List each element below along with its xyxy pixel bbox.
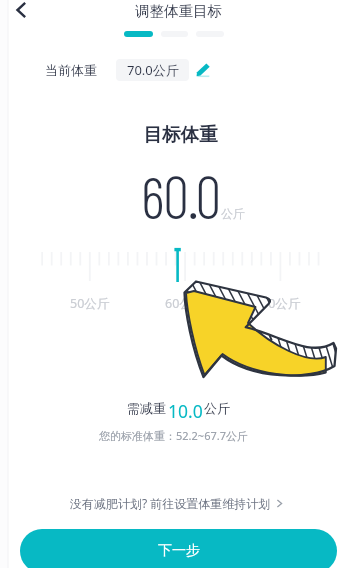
staticText: 当前体重 (45, 62, 97, 78)
button[interactable]: 下一步 (20, 529, 337, 568)
staticText: 下一步 (158, 542, 200, 560)
staticText: 公斤 (221, 206, 245, 221)
staticText: 公斤 (204, 400, 230, 416)
button[interactable]: 没有减肥计划? 前往设置体重维持计划 (4, 495, 345, 511)
staticText: 您的标准体重：52.2~67.7公斤 (1, 428, 345, 443)
staticText: 50公斤 (70, 295, 110, 312)
button[interactable]: Edit weight (192, 58, 214, 80)
staticText: 没有减肥计划? 前往设置体重维持计划 (70, 495, 271, 511)
staticText: 10.0 (168, 399, 203, 423)
staticText: 目标体重 (8, 123, 345, 146)
staticText: 调整体重目标 (6, 2, 345, 20)
staticText: 70.0公斤 (127, 61, 179, 79)
button[interactable]: 70.0公斤 (116, 59, 189, 81)
staticText: 60.0 (141, 161, 221, 231)
staticText: 70公斤 (261, 295, 301, 312)
staticText: 60公斤 (165, 295, 205, 312)
staticText: 需减重 (127, 400, 166, 416)
button[interactable]: Back (5, 0, 37, 26)
